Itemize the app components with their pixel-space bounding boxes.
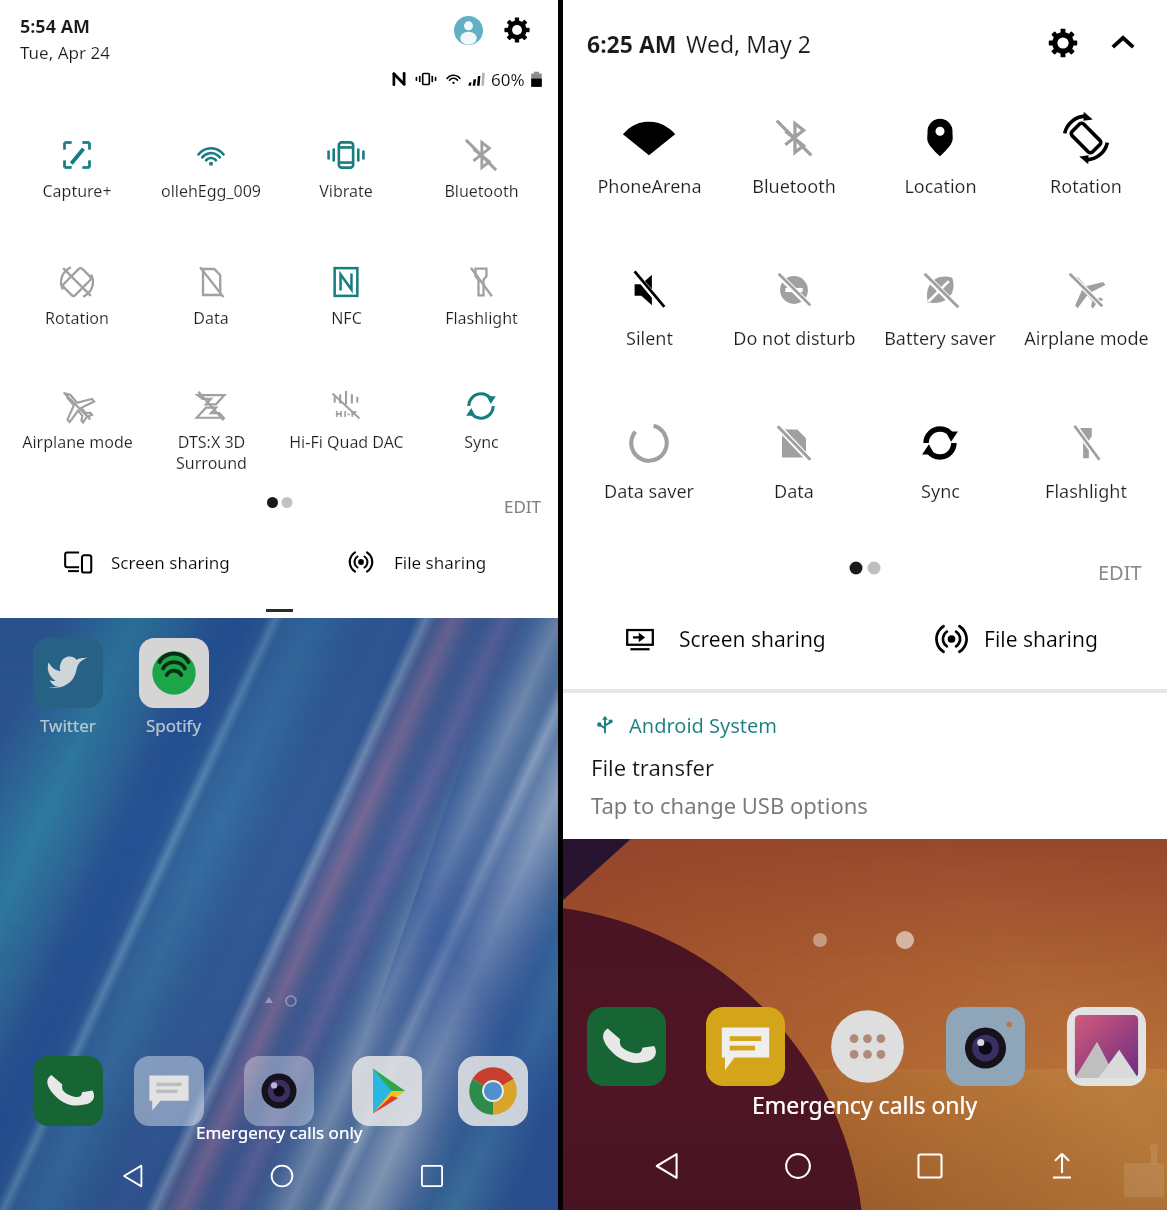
staticText: Data	[193, 307, 229, 329]
staticText: Capture+	[42, 180, 112, 202]
button[interactable]: Do not disturb	[714, 269, 874, 363]
button[interactable]: Settings	[1046, 26, 1080, 60]
staticText: Tap to change USB options	[591, 790, 868, 820]
staticText: Hi-Fi Quad DAC	[289, 431, 404, 453]
button[interactable]: Screen sharing	[64, 550, 230, 574]
button[interactable]: Bluetooth	[714, 117, 874, 211]
button[interactable]: Sync	[415, 388, 547, 474]
staticText: Screen sharing	[679, 625, 826, 654]
staticText: Airplane mode	[1024, 326, 1149, 351]
staticText: NFC	[331, 307, 362, 329]
button[interactable]: App	[587, 1007, 666, 1086]
staticText: EDIT	[504, 495, 542, 518]
button[interactable]: App	[244, 1056, 314, 1126]
button[interactable]: Sync	[860, 422, 1020, 516]
staticText: Data saver	[604, 479, 694, 504]
staticText: Sync	[464, 431, 499, 453]
button[interactable]: Hi-Fi Quad DAC	[280, 388, 412, 474]
staticText: Battery saver	[884, 326, 996, 351]
button[interactable]: App	[134, 1056, 204, 1126]
button[interactable]: File sharing	[931, 623, 1098, 655]
button[interactable]: Back	[119, 1162, 147, 1190]
button[interactable]: File transfer	[591, 752, 868, 820]
staticText: Bluetooth	[444, 180, 519, 202]
button[interactable]: Home	[268, 1162, 296, 1190]
button[interactable]: Recents	[914, 1150, 946, 1182]
button[interactable]: App	[828, 1007, 907, 1086]
button[interactable]: App	[352, 1056, 422, 1126]
staticText: 60%	[491, 68, 525, 91]
button[interactable]: Collapse	[1106, 26, 1140, 60]
button[interactable]: User profile	[454, 16, 483, 45]
staticText: 6:25 AM	[587, 28, 677, 59]
staticText: PhoneArena	[597, 174, 702, 199]
button[interactable]: DTS:X 3D Surround	[145, 388, 277, 474]
staticText: Rotation	[1050, 174, 1122, 199]
staticText: 5:54 AM	[20, 14, 91, 39]
staticText: Spotify	[146, 714, 202, 737]
button[interactable]: Bluetooth	[415, 137, 547, 223]
button[interactable]: Data saver	[569, 422, 729, 516]
button[interactable]: Silent	[569, 269, 729, 363]
staticText: Do not disturb	[733, 326, 856, 351]
button[interactable]: App	[33, 1056, 103, 1126]
button[interactable]: Flashlight	[415, 264, 547, 350]
staticText: Airplane mode	[22, 431, 133, 453]
button[interactable]: Flashlight	[1006, 422, 1166, 516]
button[interactable]: Rotation	[11, 264, 143, 350]
button[interactable]: App	[946, 1007, 1025, 1086]
staticText: File sharing	[394, 551, 487, 574]
button[interactable]: Twitter	[17, 638, 119, 737]
button[interactable]: Data	[714, 422, 874, 516]
staticText: File transfer	[591, 752, 715, 782]
staticText: Twitter	[40, 714, 96, 737]
button[interactable]: Recents	[418, 1162, 446, 1190]
staticText: Data	[774, 479, 814, 504]
button[interactable]: Home	[782, 1150, 814, 1182]
button[interactable]: Rotation	[1006, 117, 1166, 211]
button[interactable]: Vibrate	[280, 137, 412, 223]
staticText: Flashlight	[445, 307, 518, 329]
button[interactable]: Location	[860, 117, 1020, 211]
button[interactable]: NFC	[280, 264, 412, 350]
staticText: EDIT	[1098, 559, 1142, 586]
button[interactable]: File sharing	[346, 550, 487, 574]
staticText: Tue, Apr 24	[20, 41, 110, 64]
staticText: Screen sharing	[111, 551, 230, 574]
staticText: Silent	[626, 326, 673, 351]
button[interactable]: Airplane mode	[11, 388, 143, 474]
button[interactable]: App	[1067, 1007, 1146, 1086]
staticText: DTS:X 3D Surround	[176, 431, 247, 474]
button[interactable]: ollehEgg_009	[145, 137, 277, 223]
staticText: Bluetooth	[752, 174, 836, 199]
button[interactable]: PhoneArena	[569, 117, 729, 211]
staticText: Flashlight	[1045, 479, 1127, 504]
button[interactable]: Capture+	[11, 137, 143, 223]
button[interactable]: App	[706, 1007, 785, 1086]
staticText: Emergency calls only	[752, 1089, 978, 1120]
staticText: Wed, May 2	[686, 28, 811, 59]
staticText: Sync	[921, 479, 960, 504]
button[interactable]: Battery saver	[860, 269, 1020, 363]
button[interactable]: EDIT	[504, 495, 542, 518]
button[interactable]: Back	[651, 1150, 683, 1182]
staticText: Vibrate	[319, 180, 373, 202]
button[interactable]: Settings	[502, 15, 532, 45]
button[interactable]: EDIT	[1098, 559, 1142, 586]
button[interactable]: Spotify	[123, 638, 225, 737]
staticText: ollehEgg_009	[161, 180, 261, 202]
button[interactable]: App	[458, 1056, 528, 1126]
staticText: Rotation	[45, 307, 109, 329]
staticText: File sharing	[984, 625, 1098, 654]
button[interactable]: Share	[1046, 1150, 1078, 1182]
button[interactable]: Data	[145, 264, 277, 350]
button[interactable]: Airplane mode	[1006, 269, 1166, 363]
button[interactable]: Screen sharing	[624, 623, 826, 655]
staticText: Emergency calls only	[196, 1121, 363, 1144]
staticText: Location	[904, 174, 977, 199]
staticText: Android System	[629, 712, 778, 739]
